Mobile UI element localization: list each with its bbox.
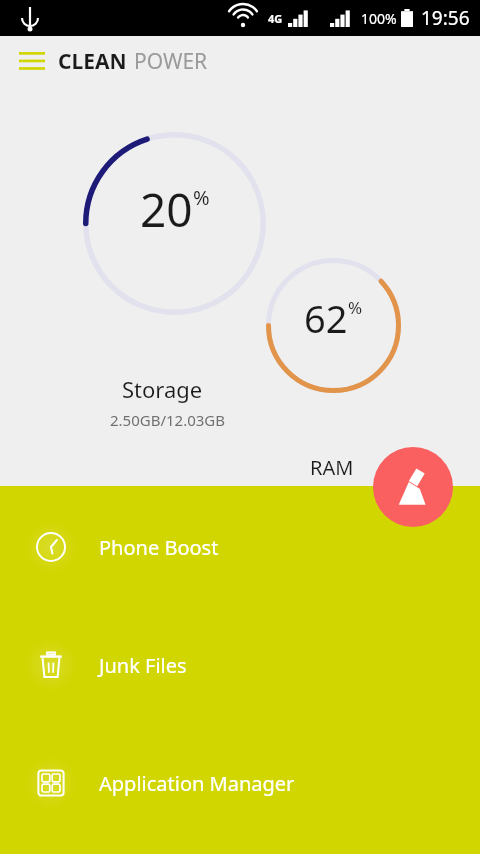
staticText: 100% (361, 9, 397, 28)
staticText: Phone Boost (99, 534, 219, 561)
staticText: 2.50GB/12.03GB (110, 410, 226, 430)
staticText: Storage (122, 374, 203, 404)
staticText: 19:56 (421, 5, 470, 31)
button[interactable]: Junk Files (0, 626, 480, 704)
staticText: 20 (140, 178, 193, 241)
staticText: POWER (134, 47, 208, 76)
staticText: 62 (304, 292, 348, 344)
staticText: Junk Files (99, 652, 187, 679)
button[interactable]: Menu (14, 43, 50, 79)
button[interactable]: Clean (373, 447, 453, 527)
staticText: 1.04GB/1.66GB (279, 484, 386, 504)
button[interactable]: Phone Boost (0, 508, 480, 586)
staticText: 4G (268, 11, 283, 26)
staticText: % (193, 184, 210, 211)
button[interactable]: Application Manager (0, 744, 480, 822)
staticText: % (348, 296, 363, 319)
staticText: CLEAN (58, 47, 127, 76)
staticText: RAM (310, 454, 354, 481)
staticText: Application Manager (99, 770, 295, 797)
